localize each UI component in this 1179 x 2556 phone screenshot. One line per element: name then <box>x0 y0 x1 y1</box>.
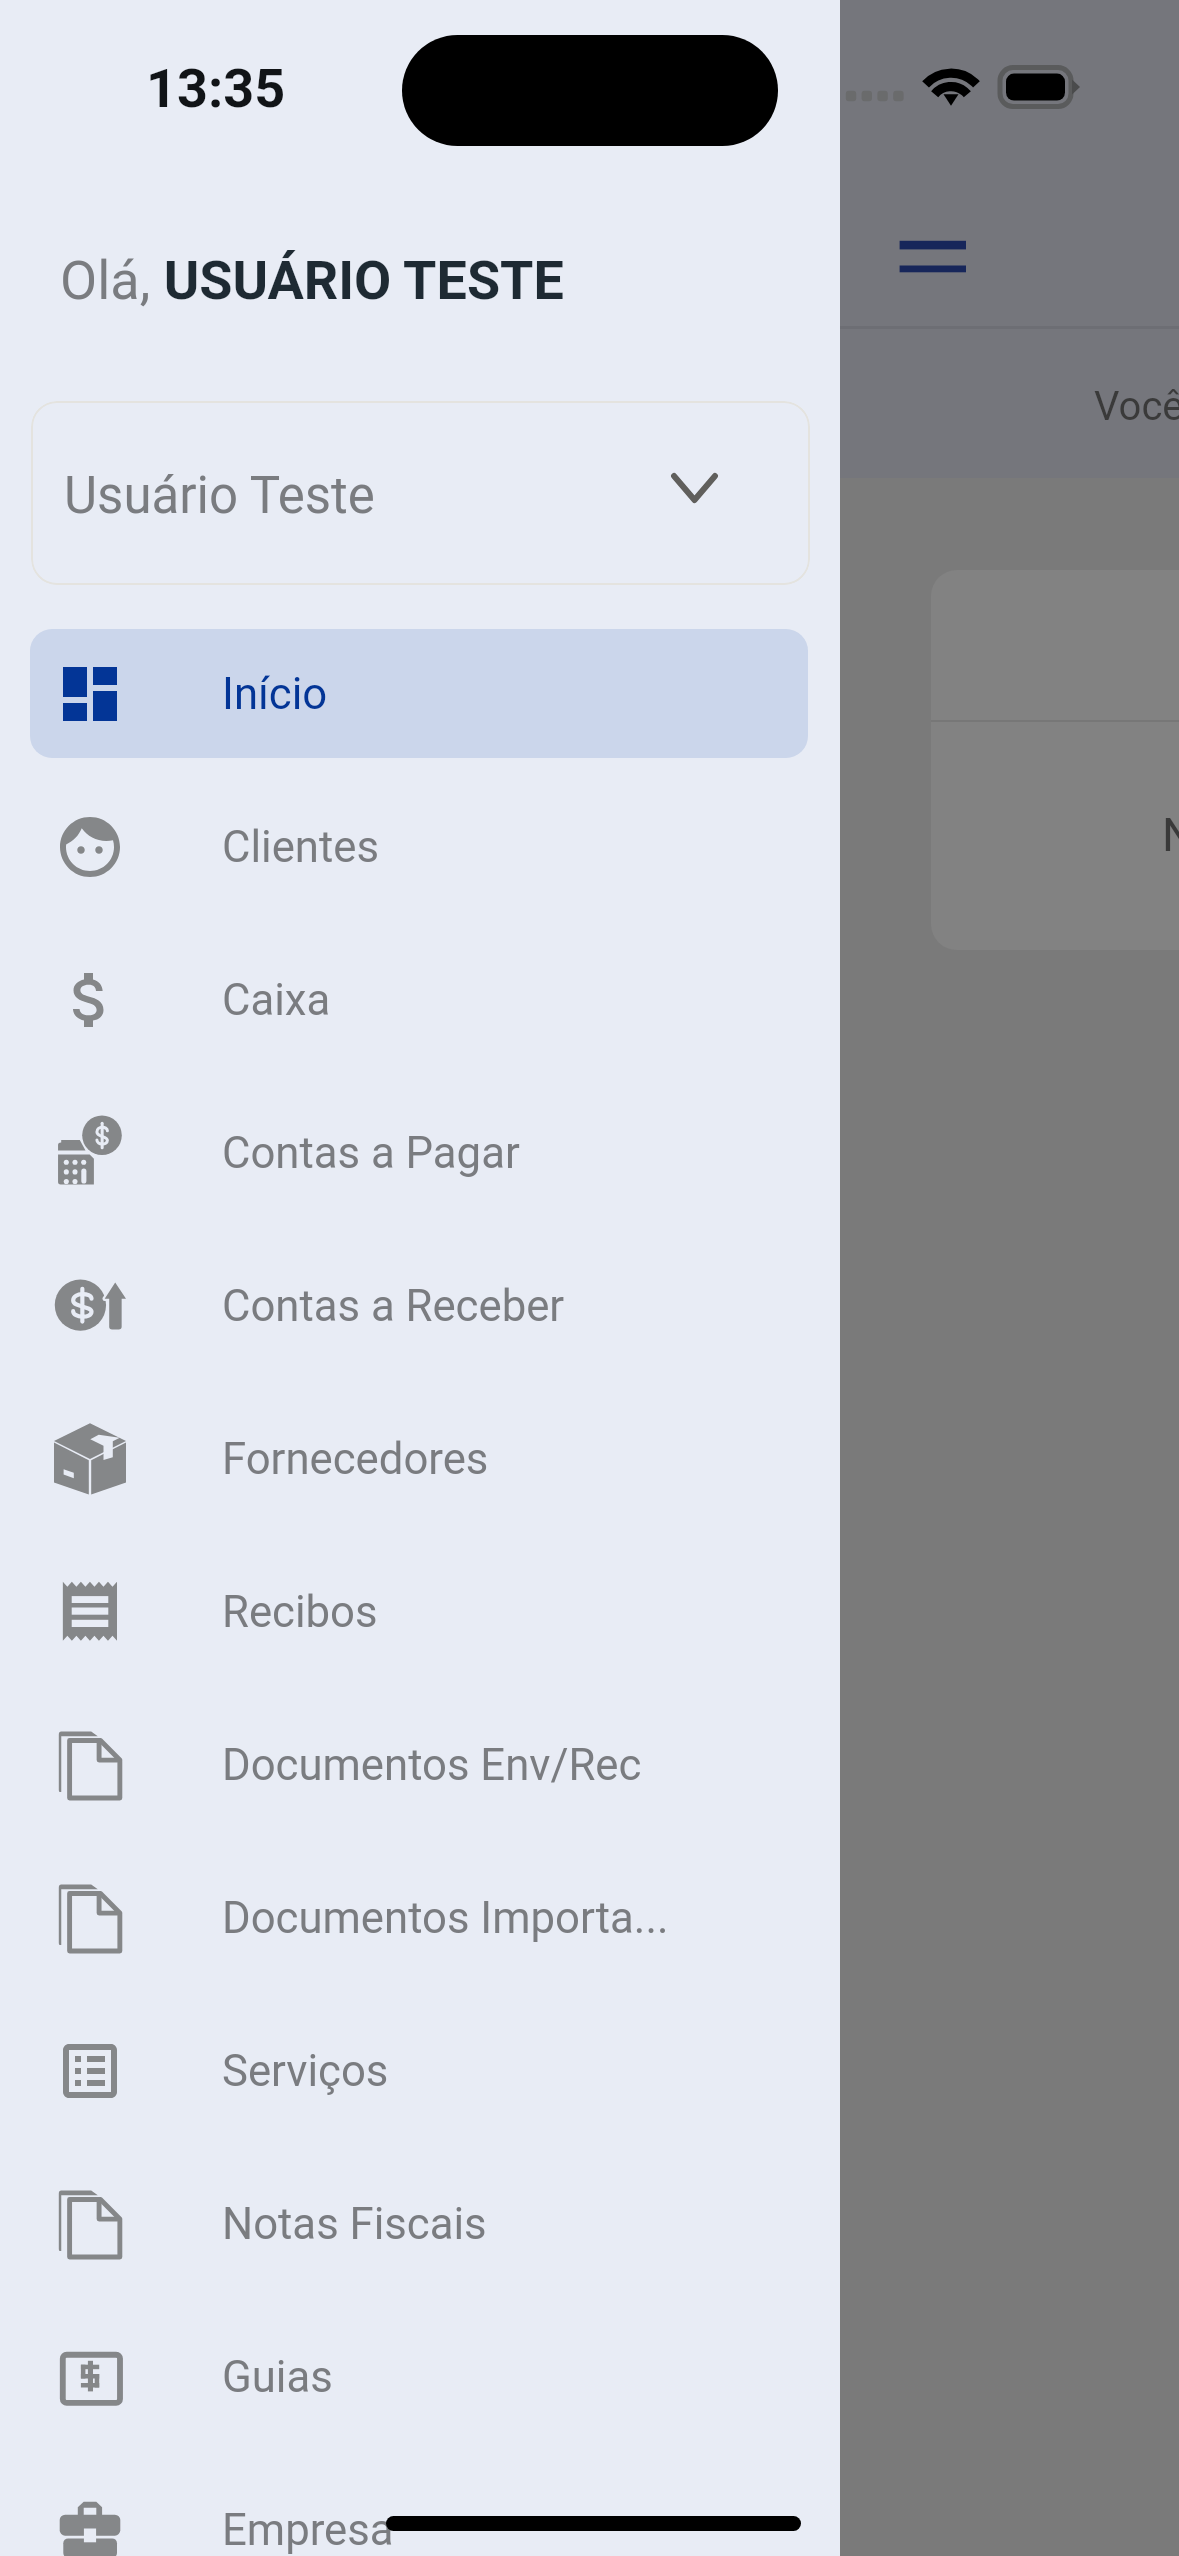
button[interactable]: Empresa <box>30 2465 808 2556</box>
staticText: Guias <box>222 2351 333 2402</box>
button[interactable]: Documentos Importa... <box>30 1853 808 1982</box>
staticText: Clientes <box>222 821 379 872</box>
button[interactable]: Notas Fiscais <box>30 2159 808 2288</box>
staticText: Documentos Env/Rec <box>222 1739 642 1790</box>
staticText: Você <box>1094 383 1179 430</box>
button[interactable]: Caixa <box>30 935 808 1064</box>
button[interactable]: Fornecedores <box>30 1394 808 1523</box>
staticText: Notas Fiscais <box>222 2198 487 2249</box>
button[interactable]: Documentos Env/Rec <box>30 1700 808 1829</box>
staticText: Contas a Receber <box>222 1280 565 1331</box>
button[interactable]: Início <box>30 629 808 758</box>
staticText: Contas a Pagar <box>222 1127 520 1178</box>
staticText: Empresa <box>222 2504 394 2555</box>
button[interactable]: Serviços <box>30 2006 808 2135</box>
staticText: Caixa <box>222 974 331 1025</box>
button[interactable]: Guias <box>30 2312 808 2441</box>
button[interactable]: Contas a Receber <box>30 1241 808 1370</box>
staticText: Serviços <box>222 2045 389 2096</box>
button[interactable]: Usuário Teste <box>31 401 810 585</box>
staticText: Recibos <box>222 1586 378 1637</box>
staticText: 13:35 <box>146 57 286 120</box>
staticText: Documentos Importa... <box>222 1892 669 1943</box>
button[interactable]: Clientes <box>30 782 808 911</box>
staticText: Usuário Teste <box>64 466 375 526</box>
button[interactable]: Contas a Pagar <box>30 1088 808 1217</box>
staticText: Início <box>222 668 328 719</box>
button[interactable]: Recibos <box>30 1547 808 1676</box>
staticText: Fornecedores <box>222 1433 489 1484</box>
staticText: N <box>1162 808 1179 862</box>
staticText: Olá, USUÁRIO TESTE <box>60 249 564 312</box>
